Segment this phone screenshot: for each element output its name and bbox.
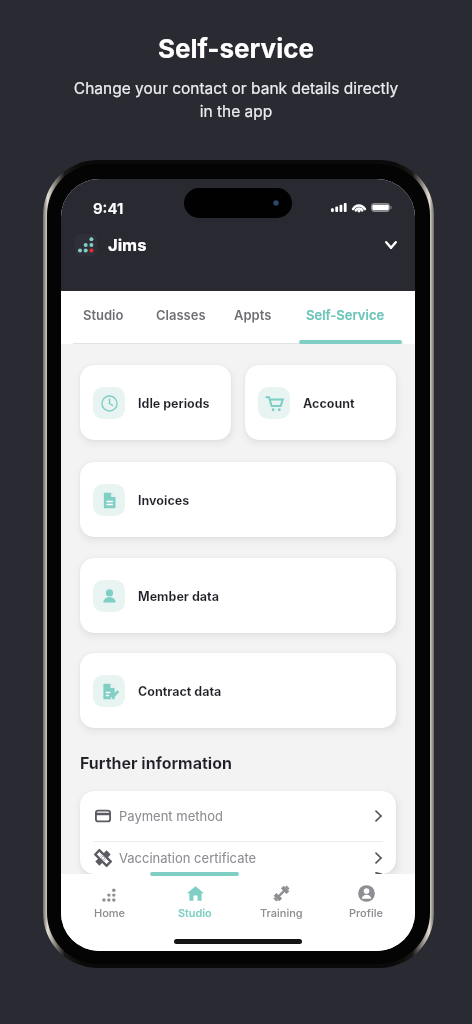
button[interactable]: Profile bbox=[330, 885, 402, 919]
staticText: Account bbox=[303, 396, 355, 411]
button[interactable]: Idle periods bbox=[80, 365, 231, 440]
staticText: Classes bbox=[156, 307, 206, 323]
staticText: Appts bbox=[234, 307, 272, 323]
staticText: 9:41 bbox=[93, 199, 124, 217]
button[interactable]: Payment method bbox=[80, 791, 396, 841]
staticText: Jims bbox=[108, 235, 147, 255]
staticText: Vaccination certificate bbox=[119, 850, 257, 866]
button[interactable]: Training bbox=[245, 885, 317, 919]
button[interactable]: Self-Service bbox=[292, 291, 398, 339]
staticText: Idle periods bbox=[138, 396, 210, 411]
button[interactable]: Contract data bbox=[80, 653, 396, 728]
staticText: Contract data bbox=[138, 684, 222, 699]
button[interactable]: Invoices bbox=[80, 462, 396, 537]
staticText: Studio bbox=[178, 906, 212, 919]
staticText: Member data bbox=[138, 589, 219, 604]
button[interactable]: Jims logo bbox=[75, 234, 97, 256]
staticText: Profile bbox=[349, 906, 383, 919]
staticText: Studio bbox=[83, 307, 124, 323]
staticText: Self-service bbox=[158, 33, 314, 64]
staticText: Payment method bbox=[119, 808, 223, 824]
staticText: Invoices bbox=[138, 493, 190, 508]
button[interactable]: Studio bbox=[159, 885, 231, 919]
button[interactable]: Appts bbox=[221, 291, 285, 339]
staticText: Home bbox=[94, 906, 126, 919]
button[interactable]: Classes bbox=[143, 291, 219, 339]
button[interactable]: Vaccination certificate bbox=[80, 842, 396, 874]
button[interactable]: Home bbox=[74, 885, 146, 919]
button[interactable]: Account bbox=[245, 365, 396, 440]
staticText: Change your contact or bank details dire… bbox=[70, 79, 402, 121]
button[interactable]: Expand studio list bbox=[380, 234, 402, 256]
button[interactable]: Studio bbox=[69, 291, 137, 339]
staticText: Training bbox=[260, 906, 303, 919]
staticText: Self-Service bbox=[306, 307, 385, 323]
button[interactable]: Member data bbox=[80, 558, 396, 633]
staticText: Further information bbox=[80, 753, 232, 772]
